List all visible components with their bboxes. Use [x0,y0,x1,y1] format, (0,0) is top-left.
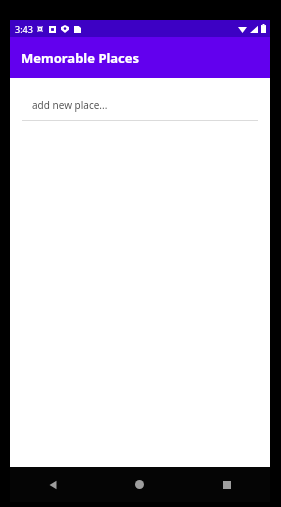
staticText: 3:43 [15,23,33,35]
button[interactable]: Back [10,467,96,502]
staticText: Memorable Places [21,49,140,67]
button[interactable]: add new place... [22,96,258,121]
staticText: add new place... [32,98,108,112]
button[interactable]: Home [96,467,183,502]
button[interactable]: Recent apps [183,467,270,502]
